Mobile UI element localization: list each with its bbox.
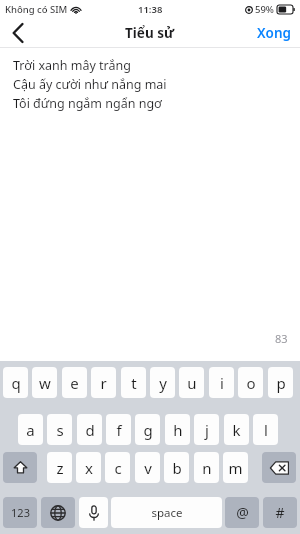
button[interactable]: Back [0,18,36,47]
button[interactable]: s [47,414,72,445]
staticText: d [85,420,95,440]
button[interactable]: Backspace [262,452,296,483]
staticText: 83 [275,331,288,346]
button[interactable]: Shift [3,452,37,483]
button[interactable]: z [47,452,72,483]
button[interactable]: q [3,367,28,398]
staticText: z [56,458,64,478]
button[interactable]: k [224,414,249,445]
button[interactable]: p [268,367,293,398]
button[interactable]: l [253,414,278,445]
staticText: Xong [257,24,292,42]
button[interactable]: x [76,452,101,483]
button[interactable]: m [223,452,248,483]
button[interactable]: n [194,452,219,483]
staticText: Tiểu sử [125,24,175,42]
staticText: o [246,373,256,393]
button[interactable]: u [179,367,204,398]
staticText: m [228,458,243,478]
staticText: k [232,420,241,440]
staticText: e [70,373,79,393]
staticText: Trời xanh mây trắng [13,57,131,74]
button[interactable]: r [91,367,116,398]
button[interactable]: a [18,414,43,445]
staticText: Không có SIM [5,3,68,16]
staticText: x [85,458,93,478]
button[interactable]: @ [225,497,259,528]
staticText: 123 [11,505,30,520]
staticText: n [202,458,212,478]
staticText: s [56,420,64,440]
staticText: p [276,373,286,393]
button[interactable]: w [32,367,57,398]
button[interactable]: Xong [257,24,292,42]
staticText: r [100,373,107,393]
staticText: # [275,503,285,522]
button[interactable]: h [165,414,190,445]
button[interactable]: g [135,414,160,445]
button[interactable]: t [121,367,146,398]
staticText: 11:38 [138,3,163,16]
button[interactable]: d [77,414,102,445]
button[interactable]: e [62,367,87,398]
button[interactable]: f [106,414,131,445]
button[interactable]: # [263,497,297,528]
staticText: 59% [255,3,274,16]
staticText: t [131,373,137,393]
button[interactable]: Change keyboard [41,497,75,528]
staticText: y [159,373,167,393]
staticText: Cậu ấy cười như nắng mai [13,76,167,93]
button[interactable]: Dictation [79,497,108,528]
button[interactable]: space [111,497,222,528]
button[interactable]: y [150,367,175,398]
button[interactable]: j [194,414,219,445]
staticText: i [220,373,224,393]
staticText: u [187,373,197,393]
staticText: b [172,458,182,478]
staticText: f [116,420,122,440]
button[interactable]: i [209,367,234,398]
staticText: q [11,373,21,393]
staticText: space [151,505,183,521]
staticText: a [26,420,35,440]
staticText: Tôi đứng ngắm ngẩn ngơ [13,95,162,112]
staticText: g [143,420,153,440]
button[interactable]: 123 [3,497,37,528]
staticText: l [264,420,268,440]
button[interactable]: o [238,367,263,398]
staticText: j [205,420,209,440]
button[interactable]: v [135,452,160,483]
button[interactable]: b [164,452,189,483]
staticText: @ [236,503,249,522]
staticText: h [173,420,183,440]
staticText: v [144,458,152,478]
staticText: w [39,373,51,393]
button[interactable]: c [105,452,130,483]
staticText: c [114,458,122,478]
